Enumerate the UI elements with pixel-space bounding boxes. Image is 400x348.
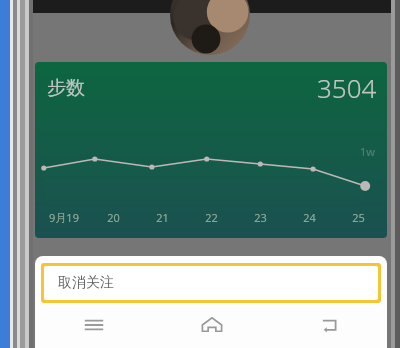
staticText: 3504 <box>317 70 377 105</box>
staticText: 23 <box>254 210 267 225</box>
staticText: 24 <box>303 210 316 225</box>
staticText: 20 <box>107 210 120 225</box>
button[interactable]: 取消关注 <box>44 266 378 300</box>
staticText: 22 <box>205 210 218 225</box>
staticText: 9月19 <box>49 210 79 225</box>
button[interactable]: 步数 <box>35 62 387 238</box>
button[interactable]: Home <box>153 305 270 345</box>
button[interactable]: Back <box>270 305 387 345</box>
staticText: 取消关注 <box>58 274 114 292</box>
staticText: 25 <box>352 210 365 225</box>
staticText: 步数 <box>47 76 85 100</box>
button[interactable]: Menu <box>35 305 153 345</box>
staticText: 21 <box>156 210 169 225</box>
staticText: 1w <box>360 144 375 159</box>
button[interactable]: Profile avatar <box>170 0 250 55</box>
